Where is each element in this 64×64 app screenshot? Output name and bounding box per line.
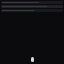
- button[interactable]: [1, 1, 63, 4]
- button[interactable]: [1, 9, 63, 12]
- button[interactable]: Action: [31, 57, 34, 62]
- button[interactable]: [1, 5, 63, 8]
